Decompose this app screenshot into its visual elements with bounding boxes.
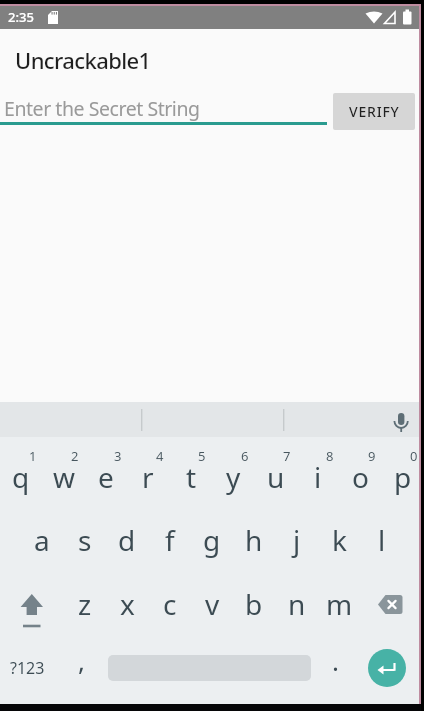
staticText: a	[34, 521, 50, 559]
staticText: 5	[198, 447, 206, 463]
staticText: u	[267, 458, 285, 496]
staticText: VERIFY	[349, 102, 400, 121]
button[interactable]	[0, 574, 63, 634]
button[interactable]: .	[314, 639, 356, 681]
staticText: w	[53, 458, 76, 496]
staticText: o	[352, 458, 369, 496]
staticText: 3	[114, 447, 122, 463]
button[interactable]: VERIFY	[333, 93, 415, 130]
button[interactable]: Enter the Secret String	[4, 93, 327, 123]
button[interactable]: l	[361, 519, 403, 561]
staticText: ,	[78, 643, 85, 678]
button[interactable]: n	[276, 583, 318, 625]
staticText: i	[314, 458, 322, 496]
staticText: ?123	[10, 657, 45, 679]
staticText: f	[165, 521, 175, 559]
button[interactable]: k	[318, 519, 360, 561]
button[interactable]: v	[191, 583, 233, 625]
staticText: t	[186, 458, 197, 496]
button[interactable]	[379, 402, 419, 437]
button[interactable]: h	[233, 519, 275, 561]
staticText: Enter the Secret String	[4, 95, 200, 122]
button[interactable]: e	[85, 456, 127, 498]
button[interactable]: o	[339, 456, 381, 498]
staticText: p	[394, 458, 412, 496]
staticText: 9	[368, 447, 376, 463]
button[interactable]: d	[106, 519, 148, 561]
button[interactable]: m	[318, 583, 360, 625]
staticText: k	[332, 521, 347, 559]
staticText: h	[245, 521, 263, 559]
button[interactable]: x	[106, 583, 148, 625]
staticText: m	[326, 585, 353, 623]
staticText: Uncrackable1	[15, 45, 151, 75]
button[interactable]: q	[0, 456, 42, 498]
button[interactable]: j	[276, 519, 318, 561]
button[interactable]	[368, 649, 406, 687]
staticText: 7	[283, 447, 291, 463]
button[interactable]: t	[170, 456, 212, 498]
button[interactable]: ,	[60, 639, 102, 681]
staticText: 6	[241, 447, 249, 463]
button[interactable]	[361, 574, 419, 634]
button[interactable]: u	[255, 456, 297, 498]
staticText: s	[78, 521, 92, 559]
staticText: n	[288, 585, 306, 623]
button[interactable]: f	[149, 519, 191, 561]
staticText: e	[98, 458, 114, 496]
staticText: b	[245, 585, 263, 623]
staticText: 4	[156, 447, 164, 463]
staticText: r	[142, 458, 154, 496]
button[interactable]: p	[382, 456, 424, 498]
button[interactable]: b	[233, 583, 275, 625]
staticText: c	[163, 585, 177, 623]
staticText: x	[120, 585, 135, 623]
staticText: q	[12, 458, 30, 496]
button[interactable]: c	[149, 583, 191, 625]
button[interactable]: s	[64, 519, 106, 561]
button[interactable]: r	[127, 456, 169, 498]
staticText: j	[293, 521, 301, 559]
button[interactable]: ?123	[2, 648, 52, 688]
staticText: 0	[410, 447, 418, 463]
staticText: y	[226, 458, 241, 496]
button[interactable]: g	[191, 519, 233, 561]
staticText: 2:35	[8, 8, 34, 26]
staticText: z	[78, 585, 92, 623]
staticText: 8	[326, 447, 334, 463]
button[interactable]: z	[64, 583, 106, 625]
staticText: l	[378, 521, 386, 559]
staticText: d	[118, 521, 136, 559]
staticText: v	[205, 585, 220, 623]
staticText: 2	[71, 447, 79, 463]
button[interactable]: w	[43, 456, 85, 498]
staticText: g	[203, 521, 221, 559]
button[interactable]: a	[21, 519, 63, 561]
button[interactable]: i	[297, 456, 339, 498]
button[interactable]: y	[212, 456, 254, 498]
staticText: 1	[29, 447, 37, 463]
staticText: .	[332, 643, 339, 678]
